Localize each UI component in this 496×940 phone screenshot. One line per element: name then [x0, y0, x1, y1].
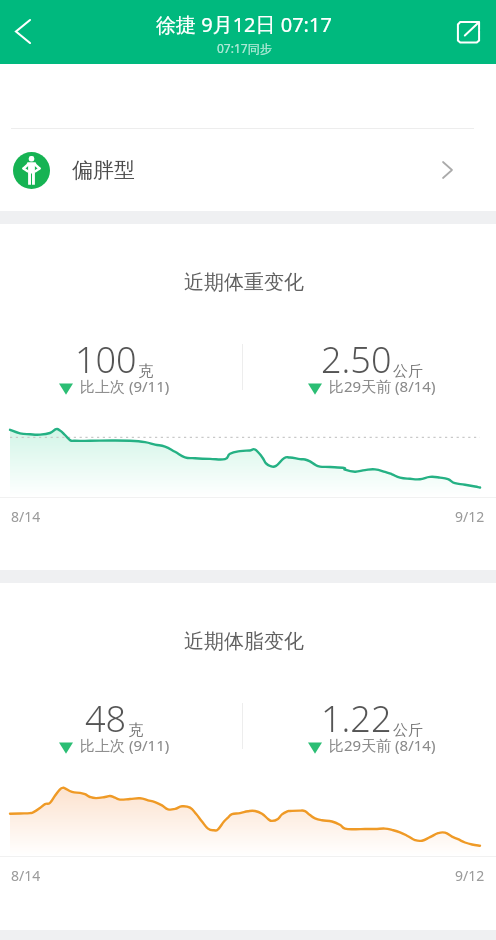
staticText: 9/12: [455, 507, 485, 526]
staticText: 9/12: [455, 866, 485, 885]
staticText: 克: [128, 721, 143, 740]
staticText: 公斤: [393, 721, 423, 740]
staticText: 2.50: [321, 335, 392, 384]
staticText: 近期体脂变化: [0, 629, 492, 654]
staticText: 8/14: [11, 866, 41, 885]
staticText: 比29天前 (8/14): [329, 735, 436, 755]
staticText: 克: [138, 362, 153, 381]
staticText: 1.22: [321, 694, 392, 743]
staticText: 偏胖型: [72, 157, 135, 183]
staticText: 100: [75, 335, 137, 384]
staticText: 近期体重变化: [0, 270, 492, 295]
staticText: 徐捷 9月12日 07:17: [156, 11, 332, 38]
button[interactable]: Share: [445, 9, 491, 55]
button[interactable]: Back: [0, 8, 46, 54]
button[interactable]: 偏胖型: [0, 129, 496, 211]
staticText: 48: [85, 694, 127, 743]
staticText: 07:17同步: [217, 40, 272, 56]
staticText: 比29天前 (8/14): [329, 376, 436, 396]
staticText: 公斤: [393, 362, 423, 381]
staticText: 8/14: [11, 507, 41, 526]
staticText: 比上次 (9/11): [80, 735, 170, 755]
staticText: 比上次 (9/11): [80, 376, 170, 396]
